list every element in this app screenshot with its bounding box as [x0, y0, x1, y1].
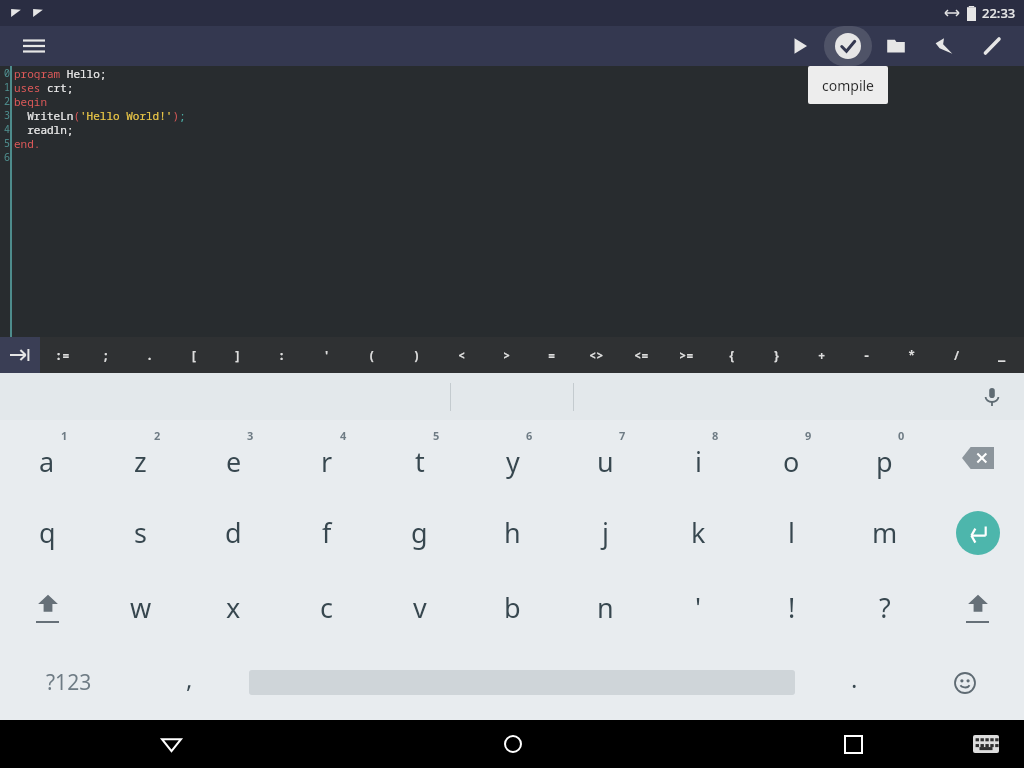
staticText: 4 [340, 428, 347, 443]
button[interactable]: Voice input [974, 379, 1010, 415]
button[interactable]: Undo [920, 26, 968, 66]
button[interactable]: * [889, 337, 934, 373]
button[interactable]: ; [84, 337, 128, 373]
staticText: compile [822, 76, 875, 95]
button[interactable]: , [138, 645, 240, 720]
staticText: f [322, 514, 332, 551]
button[interactable]: Compile [824, 26, 872, 66]
button[interactable]: m [838, 495, 931, 570]
staticText: r [321, 443, 333, 480]
button[interactable]: k [652, 495, 745, 570]
button[interactable]: Tab [0, 337, 40, 373]
button[interactable]: _ [979, 337, 1024, 373]
button[interactable]: q [0, 495, 94, 570]
staticText: v [413, 589, 427, 626]
button[interactable]: w [94, 570, 187, 645]
button[interactable]: Back [0, 720, 342, 768]
button[interactable]: Shift [931, 570, 1024, 645]
button[interactable]: 1 [0, 420, 94, 495]
button[interactable]: s [94, 495, 187, 570]
button[interactable]: d [187, 495, 280, 570]
button[interactable]: Backspace [931, 420, 1024, 495]
staticText: WriteLn('Hello World!'); [14, 108, 186, 122]
staticText: t [415, 443, 425, 480]
button[interactable]: 0 [838, 420, 931, 495]
button[interactable]: j [559, 495, 652, 570]
button[interactable]: <> [574, 337, 619, 373]
button[interactable]: b [466, 570, 559, 645]
staticText: 9 [805, 428, 812, 443]
staticText: < [458, 347, 466, 363]
staticText: 2 [4, 94, 10, 108]
staticText: x [226, 589, 241, 626]
button[interactable]: [ [172, 337, 216, 373]
button[interactable]: Home [342, 720, 683, 768]
staticText: m [872, 514, 898, 551]
button[interactable]: } [754, 337, 799, 373]
button[interactable]: f [280, 495, 373, 570]
button[interactable]: 6 [466, 420, 559, 495]
button[interactable]: > [484, 337, 529, 373]
button[interactable]: + [799, 337, 844, 373]
button[interactable]: h [466, 495, 559, 570]
button[interactable]: ?123 [0, 645, 138, 720]
button[interactable]: ? [838, 570, 931, 645]
button[interactable]: : [260, 337, 304, 373]
button[interactable]: 3 [187, 420, 280, 495]
button[interactable]: ] [216, 337, 260, 373]
button[interactable]: Edit [968, 26, 1016, 66]
button[interactable]: := [40, 337, 84, 373]
button[interactable]: n [559, 570, 652, 645]
button[interactable]: x [187, 570, 280, 645]
staticText: } [773, 347, 781, 363]
button[interactable]: = [529, 337, 574, 373]
button[interactable]: Menu [14, 26, 54, 66]
staticText: i [695, 443, 702, 480]
staticText: d [225, 514, 242, 551]
button[interactable]: Run [776, 26, 824, 66]
button[interactable]: / [934, 337, 979, 373]
button[interactable]: g [373, 495, 466, 570]
staticText: 3 [4, 108, 10, 122]
staticText: ' [695, 589, 702, 626]
staticText: _ [998, 347, 1006, 363]
button[interactable]: Recents [683, 720, 1024, 768]
button[interactable]: <= [619, 337, 664, 373]
button[interactable]: . [128, 337, 172, 373]
staticText: [ [190, 347, 198, 363]
staticText: 22:33 [982, 4, 1016, 22]
button[interactable]: - [844, 337, 889, 373]
staticText: ? [879, 589, 891, 626]
button[interactable]: c [280, 570, 373, 645]
staticText: k [691, 514, 706, 551]
button[interactable]: 4 [280, 420, 373, 495]
button[interactable]: 5 [373, 420, 466, 495]
staticText: * [908, 347, 916, 363]
button[interactable]: { [709, 337, 754, 373]
button[interactable]: Enter [931, 495, 1024, 570]
button[interactable]: Space [240, 645, 803, 720]
staticText: 6 [4, 150, 10, 164]
staticText: h [504, 514, 521, 551]
button[interactable]: l [745, 495, 838, 570]
button[interactable]: 8 [652, 420, 745, 495]
button[interactable]: Hide keyboard [968, 726, 1004, 762]
button[interactable]: ' [304, 337, 349, 373]
button[interactable]: Shift [0, 570, 94, 645]
button[interactable]: Emoji [905, 645, 1024, 720]
button[interactable]: 9 [745, 420, 838, 495]
button[interactable]: . [803, 645, 905, 720]
button[interactable]: 7 [559, 420, 652, 495]
button[interactable]: Open file [872, 26, 920, 66]
staticText: q [39, 514, 56, 551]
button[interactable]: 2 [94, 420, 187, 495]
staticText: <= [634, 347, 649, 363]
button[interactable]: ( [349, 337, 394, 373]
button[interactable]: ) [394, 337, 439, 373]
button[interactable]: ' [652, 570, 745, 645]
button[interactable]: v [373, 570, 466, 645]
button[interactable]: ! [745, 570, 838, 645]
button[interactable]: >= [664, 337, 709, 373]
button[interactable]: < [439, 337, 484, 373]
staticText: w [130, 589, 152, 626]
